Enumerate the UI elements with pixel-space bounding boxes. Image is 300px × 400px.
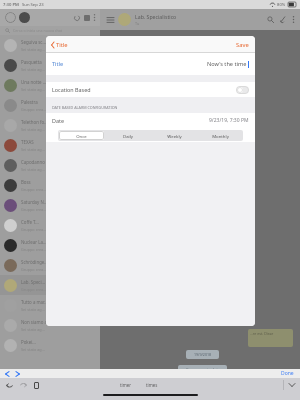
staticText: timer bbox=[120, 382, 132, 388]
staticText: Pokei… bbox=[21, 339, 36, 345]
staticText: 9/23/19, 7:30 PM bbox=[209, 117, 249, 124]
button[interactable]: Coffe T… bbox=[0, 215, 100, 235]
button[interactable]: Paste bbox=[34, 382, 39, 389]
staticText: Pasquetta bbox=[21, 59, 42, 65]
staticText: Weekly bbox=[167, 133, 182, 139]
staticText: Cerca o inizia una nuova chat bbox=[13, 28, 63, 33]
staticText: Gruppo crea… bbox=[21, 287, 47, 292]
staticText: Sei stato ag… bbox=[21, 67, 45, 72]
staticText: Now's the time bbox=[207, 60, 247, 68]
button[interactable]: TEXAS bbox=[0, 135, 100, 155]
staticText: Sei stato ag… bbox=[21, 147, 45, 152]
button[interactable]: Seguiva sc… bbox=[0, 35, 100, 55]
staticText: Gruppo crea… bbox=[21, 267, 47, 272]
staticText: Tutto a mar… bbox=[21, 299, 48, 305]
staticText: Seguiva sc… bbox=[21, 39, 46, 45]
staticText: Title bbox=[52, 60, 64, 68]
button[interactable]: Non siamo a… bbox=[0, 315, 100, 335]
staticText: 19/9/2018 bbox=[194, 352, 212, 357]
button[interactable]: Previous field bbox=[5, 371, 9, 377]
staticText: 7:30 PM bbox=[3, 2, 19, 8]
button[interactable]: Archived bbox=[84, 15, 90, 21]
staticText: Title bbox=[56, 41, 68, 49]
staticText: Sei stato ag… bbox=[21, 347, 45, 352]
staticText: Non siamo a… bbox=[21, 319, 51, 325]
button[interactable]: Done bbox=[277, 370, 298, 377]
staticText: Sei stato ag… bbox=[21, 167, 45, 172]
staticText: Monthly bbox=[212, 133, 229, 139]
button[interactable]: Next field bbox=[16, 371, 20, 377]
staticText: Lab. Specialistico bbox=[135, 13, 177, 20]
staticText: Schrödinge… bbox=[21, 259, 48, 265]
staticText: Telethon fo… bbox=[21, 119, 48, 125]
button[interactable]: More options bbox=[292, 16, 295, 23]
staticText: …re est. Disse bbox=[250, 331, 274, 336]
button[interactable]: Date bbox=[46, 113, 255, 128]
button[interactable]: Menu bbox=[107, 17, 114, 23]
button[interactable]: Schrödinge… bbox=[0, 255, 100, 275]
button[interactable]: times bbox=[139, 382, 165, 388]
button[interactable]: Palestra bbox=[0, 95, 100, 115]
staticText: Daily bbox=[123, 133, 133, 139]
staticText: Save bbox=[236, 41, 249, 49]
staticText: Gruppo crea… bbox=[21, 247, 47, 252]
button[interactable]: timer bbox=[113, 382, 139, 388]
button[interactable]: Redo bbox=[20, 382, 27, 388]
button[interactable]: Pokei… bbox=[0, 335, 100, 355]
staticText: Una notte … bbox=[21, 79, 47, 85]
staticText: Done bbox=[281, 370, 294, 377]
staticText: times bbox=[146, 382, 158, 388]
button[interactable]: Title bbox=[46, 38, 74, 52]
button[interactable]: Attach bbox=[280, 16, 286, 23]
button[interactable]: Saturday N… bbox=[0, 195, 100, 215]
staticText: TEXAS bbox=[21, 139, 34, 145]
button[interactable]: Hide keyboard bbox=[289, 383, 295, 387]
button[interactable]: Chats bbox=[5, 12, 16, 23]
staticText: Date bbox=[52, 117, 64, 124]
button[interactable]: Boss bbox=[0, 175, 100, 195]
button[interactable]: Refresh bbox=[74, 15, 80, 21]
staticText: Boss bbox=[21, 179, 31, 185]
button[interactable]: Daily bbox=[105, 130, 151, 141]
staticText: Sei stato ag… bbox=[21, 307, 45, 312]
button[interactable]: More options bbox=[93, 14, 96, 21]
staticText: Coffe T… bbox=[21, 219, 39, 225]
staticText: Saturday N… bbox=[21, 199, 48, 205]
button[interactable]: Pasquetta bbox=[0, 55, 100, 75]
staticText: Gruppo crea… bbox=[21, 227, 47, 232]
staticText: Gruppo creato da te bbox=[186, 367, 220, 372]
staticText: Tu bbox=[135, 21, 140, 26]
staticText: DATE BASED ALARM CONFIGURATION bbox=[52, 105, 118, 110]
button[interactable]: Undo bbox=[6, 382, 13, 388]
staticText: Sun Sep 23 bbox=[22, 2, 44, 8]
staticText: Location Based bbox=[52, 86, 91, 93]
staticText: Sei stato ag… bbox=[21, 47, 45, 52]
staticText: Sei stato ag… bbox=[21, 87, 45, 92]
button[interactable]: Telethon fo… bbox=[0, 115, 100, 135]
button[interactable]: Cerca o inizia una nuova chat bbox=[0, 26, 100, 35]
button[interactable]: Once bbox=[59, 131, 104, 140]
button[interactable]: Group photo bbox=[118, 13, 131, 26]
button[interactable]: Monthly bbox=[197, 130, 243, 141]
staticText: Palestra bbox=[21, 99, 38, 105]
button[interactable]: Lab. Speci… bbox=[0, 275, 100, 295]
button[interactable]: Title bbox=[46, 53, 255, 75]
staticText: Gruppo crea… bbox=[21, 107, 47, 112]
button[interactable]: Profile bbox=[19, 12, 30, 23]
staticText: 80% bbox=[277, 2, 286, 8]
staticText: Capodanno bbox=[21, 159, 45, 165]
button[interactable]: Una notte … bbox=[0, 75, 100, 95]
button[interactable]: Search bbox=[267, 16, 274, 23]
button[interactable]: Tutto a mar… bbox=[0, 295, 100, 315]
button[interactable]: Location Based toggle bbox=[236, 86, 249, 94]
staticText: Gruppo crea… bbox=[21, 207, 47, 212]
staticText: Lab. Speci… bbox=[21, 279, 46, 285]
button[interactable]: Save bbox=[230, 38, 255, 52]
button[interactable]: Capodanno bbox=[0, 155, 100, 175]
staticText: Sei stato ag… bbox=[21, 327, 45, 332]
button[interactable]: Nuclear La… bbox=[0, 235, 100, 255]
staticText: Nuclear La… bbox=[21, 239, 47, 245]
button[interactable]: Weekly bbox=[151, 130, 197, 141]
staticText: Sei stato ag… bbox=[21, 127, 45, 132]
staticText: Gruppo crea… bbox=[21, 187, 47, 192]
